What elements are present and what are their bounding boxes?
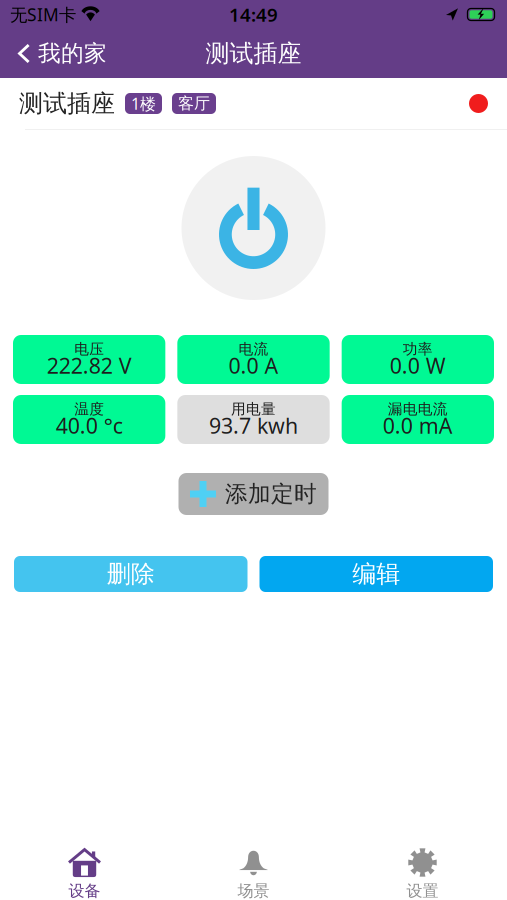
staticText: 添加定时 — [225, 480, 317, 508]
staticText: 功率 — [403, 340, 433, 358]
staticText: 删除 — [107, 559, 155, 589]
staticText: 0.0 A — [228, 351, 278, 380]
staticText: 93.7 kwh — [209, 411, 298, 440]
staticText: 电压 — [74, 340, 104, 358]
staticText: 40.0 °c — [56, 411, 123, 440]
button[interactable]: 添加定时 — [178, 473, 328, 515]
staticText: 我的家 — [38, 40, 107, 67]
staticText: 温度 — [74, 400, 104, 418]
staticText: 0.0 mA — [383, 411, 453, 440]
staticText: 场景 — [237, 881, 269, 900]
button[interactable]: Power toggle — [181, 156, 325, 300]
staticText: 222.82 V — [47, 351, 132, 380]
staticText: 1楼 — [131, 93, 156, 114]
staticText: 客厅 — [178, 94, 210, 113]
button[interactable]: 设置 — [338, 817, 507, 900]
button[interactable]: 场景 — [169, 817, 338, 900]
staticText: 用电量 — [231, 400, 276, 418]
staticText: 编辑 — [352, 559, 400, 589]
button[interactable]: 编辑 — [259, 556, 493, 592]
staticText: 设备 — [68, 881, 100, 900]
button[interactable]: 设备 — [0, 817, 169, 900]
button[interactable]: 删除 — [14, 556, 247, 592]
staticText: 电流 — [238, 340, 268, 358]
staticText: 测试插座 — [205, 39, 301, 68]
staticText: 测试插座 — [19, 89, 115, 118]
staticText: 无SIM卡 — [10, 3, 76, 26]
staticText: 漏电电流 — [388, 400, 448, 418]
staticText: 0.0 W — [390, 351, 446, 380]
button[interactable]: 我的家 — [0, 30, 119, 77]
staticText: 14:49 — [229, 2, 278, 27]
staticText: 设置 — [406, 881, 438, 900]
